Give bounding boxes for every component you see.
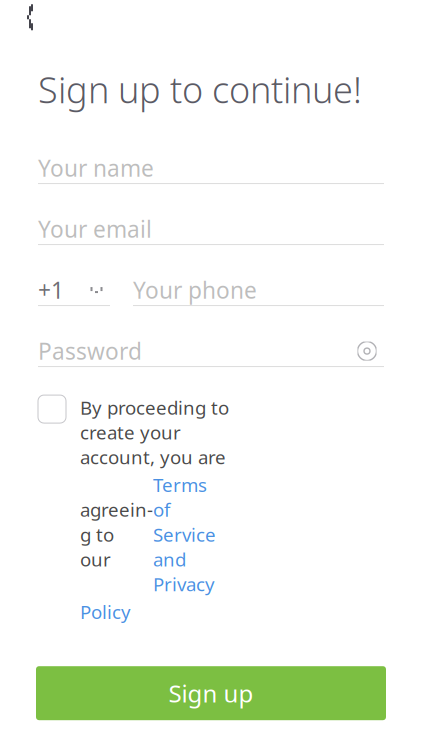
staticText: Password [38,336,142,366]
staticText: Sign up to continue! [38,65,362,113]
button[interactable]: Agree to terms [38,395,66,423]
button[interactable]: Country code [38,275,110,306]
staticText: Your email [38,214,152,244]
staticText: By proceeding to create your account, yo… [80,395,229,469]
button[interactable]: Policy [80,599,235,624]
button[interactable]: Back [8,0,52,39]
staticText: Your phone [133,275,257,305]
button[interactable]: Terms of Service and Privacy [153,472,216,596]
staticText: Sign up [168,677,253,709]
button[interactable]: Show password [350,337,384,365]
staticText: Policy [80,599,131,624]
staticText: Your name [38,153,154,183]
staticText: +1 [38,275,64,305]
staticText: agreeing to our [80,497,153,572]
staticText: Terms of Service and Privacy [153,472,216,596]
button[interactable]: Sign up [36,666,386,720]
